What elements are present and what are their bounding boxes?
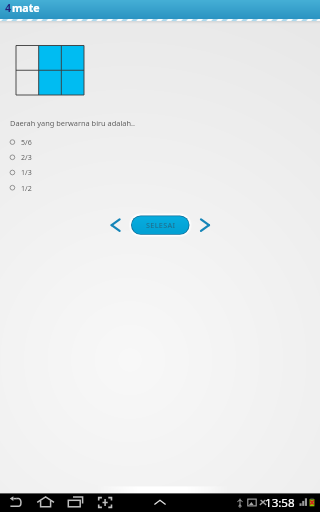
button[interactable]: Home xyxy=(37,494,55,512)
button[interactable]: 4 xyxy=(5,1,40,15)
button[interactable]: 1/3 xyxy=(6,165,76,179)
button[interactable]: 2/3 xyxy=(6,150,76,164)
staticText: 1/2 xyxy=(21,183,32,193)
button[interactable]: Screenshot xyxy=(96,494,114,512)
staticText: SELESAI xyxy=(146,220,176,230)
staticText: 4 xyxy=(5,1,12,15)
button[interactable]: Previous question xyxy=(106,215,126,235)
staticText: 1/3 xyxy=(21,167,32,177)
button[interactable]: Next question xyxy=(195,215,215,235)
button[interactable]: SELESAI xyxy=(131,215,190,234)
button[interactable]: Show navigation bar xyxy=(151,494,169,512)
staticText: 5/6 xyxy=(21,137,32,147)
staticText: mate xyxy=(12,1,40,15)
staticText: Daerah yang berwarna biru adalah.. xyxy=(10,118,136,128)
staticText: 2/3 xyxy=(21,152,32,162)
staticText: 13:58 xyxy=(265,495,295,511)
button[interactable]: 1/2 xyxy=(6,181,76,195)
button[interactable]: Back xyxy=(7,494,25,512)
button[interactable]: 5/6 xyxy=(6,135,76,149)
button[interactable]: Recent apps xyxy=(67,494,85,512)
